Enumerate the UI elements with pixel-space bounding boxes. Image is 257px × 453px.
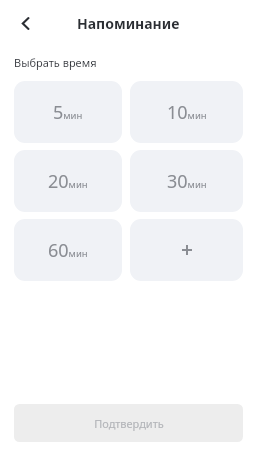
button[interactable]: 20мин xyxy=(14,150,122,212)
staticText: Напоминание xyxy=(77,14,180,33)
staticText: 5мин xyxy=(53,100,83,125)
staticText: 10мин xyxy=(167,100,207,125)
staticText: 60мин xyxy=(48,238,88,263)
button[interactable]: Add custom time xyxy=(130,219,243,281)
button[interactable]: 5мин xyxy=(14,81,122,143)
staticText: 20мин xyxy=(48,169,88,194)
button[interactable]: Back xyxy=(10,8,40,38)
button[interactable]: 60мин xyxy=(14,219,122,281)
button[interactable]: 10мин xyxy=(130,81,243,143)
staticText: Подтвердить xyxy=(94,416,164,431)
button[interactable]: Подтвердить xyxy=(14,404,243,442)
staticText: 30мин xyxy=(167,169,207,194)
button[interactable]: 30мин xyxy=(130,150,243,212)
staticText: Выбрать время xyxy=(14,55,97,70)
